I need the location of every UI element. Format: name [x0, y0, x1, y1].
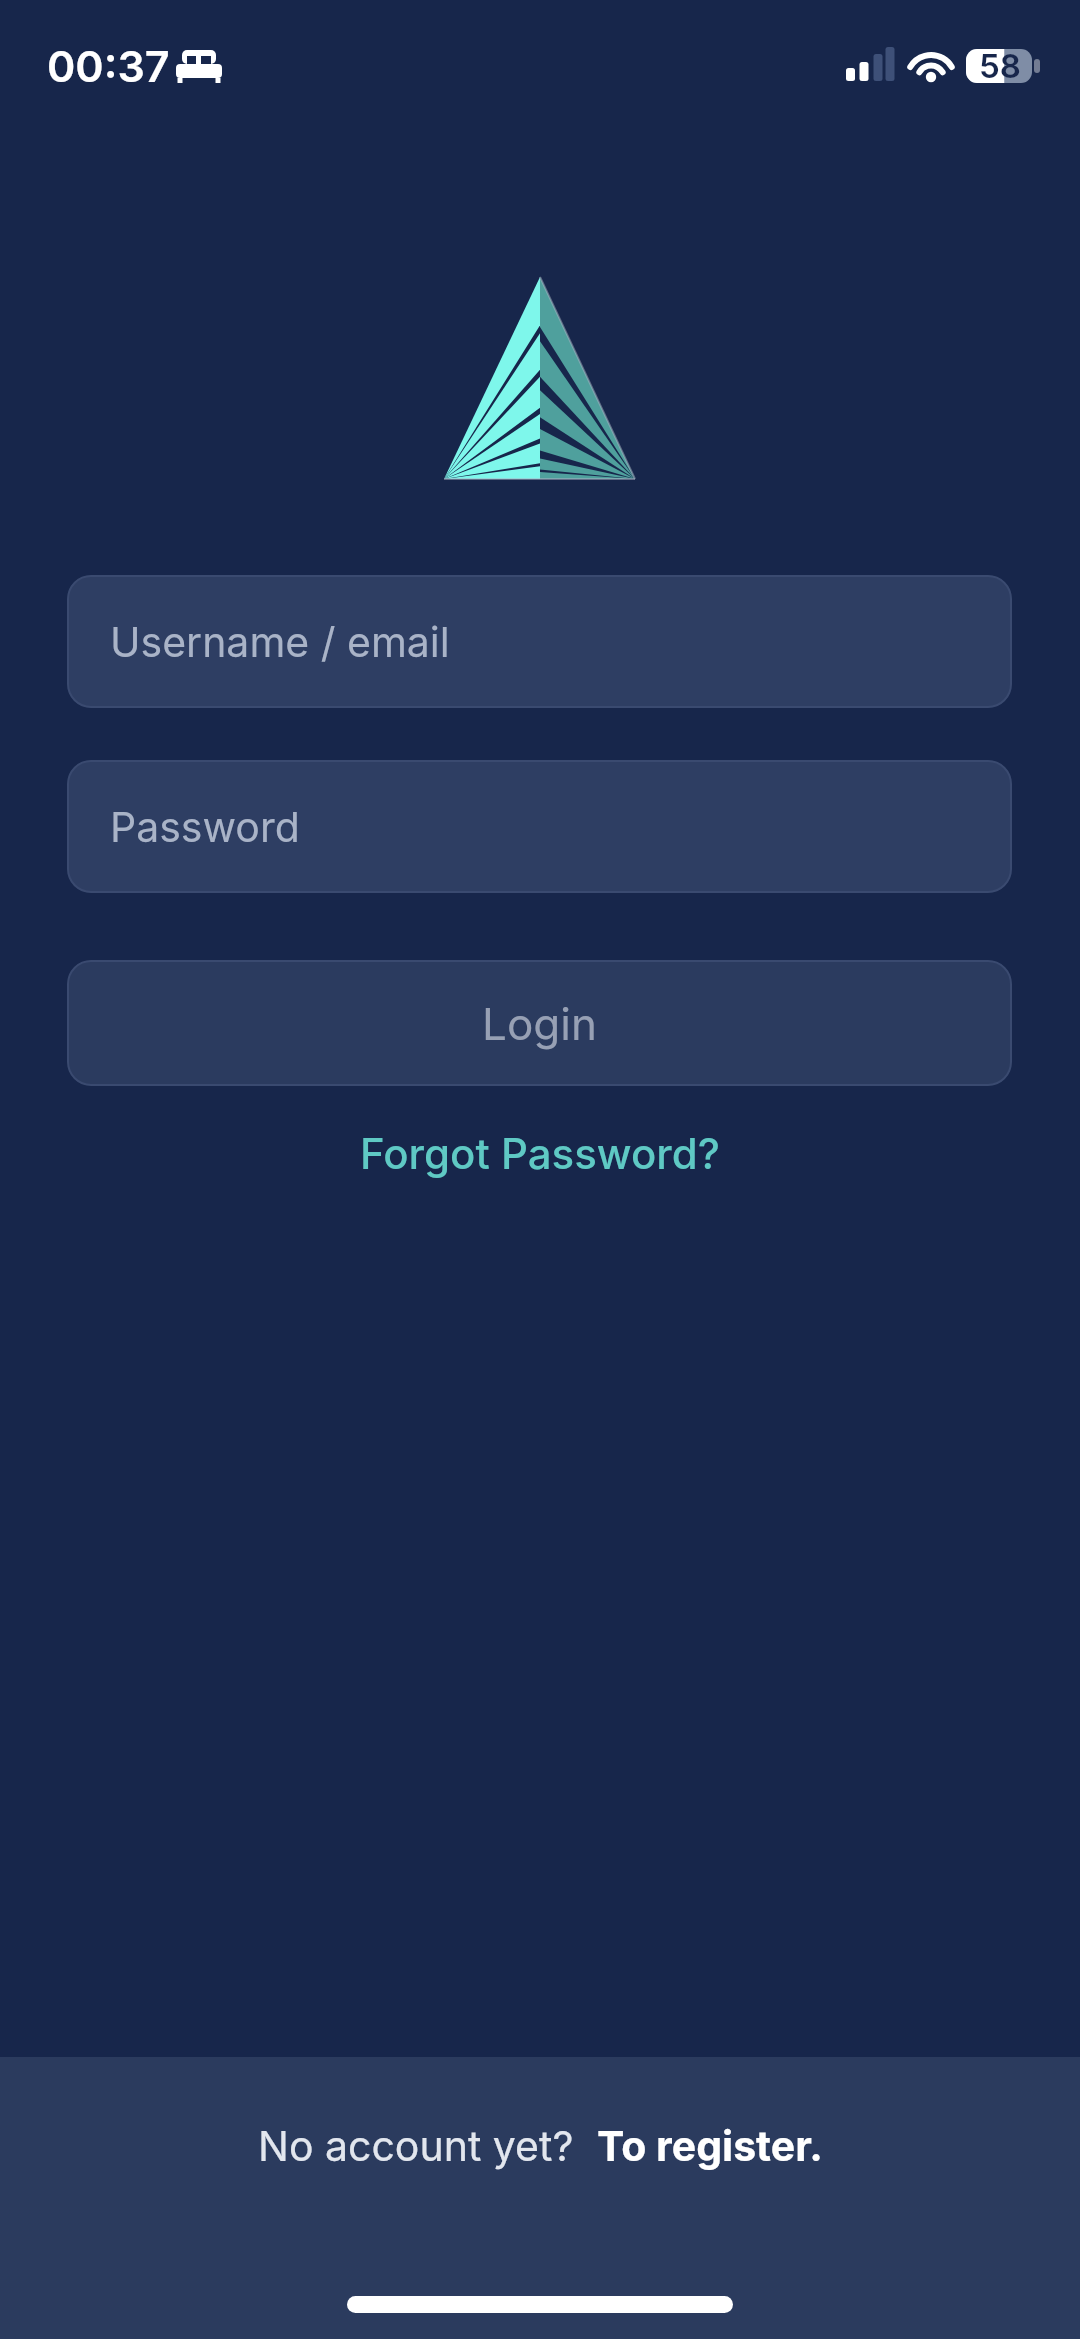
button[interactable]: Password: [67, 760, 1012, 893]
staticText: Username / email: [110, 617, 450, 667]
staticText: No account yet?: [258, 2121, 597, 2171]
button[interactable]: Username / email: [67, 575, 1012, 708]
button[interactable]: No account yet?: [0, 2121, 1080, 2171]
button[interactable]: Forgot Password?: [360, 1128, 720, 1179]
staticText: To register.: [597, 2121, 823, 2171]
staticText: Password: [110, 802, 300, 852]
staticText: Login: [482, 997, 597, 1050]
staticText: 58: [979, 46, 1021, 86]
staticText: 00:37: [47, 40, 170, 92]
button[interactable]: Login: [67, 960, 1012, 1086]
